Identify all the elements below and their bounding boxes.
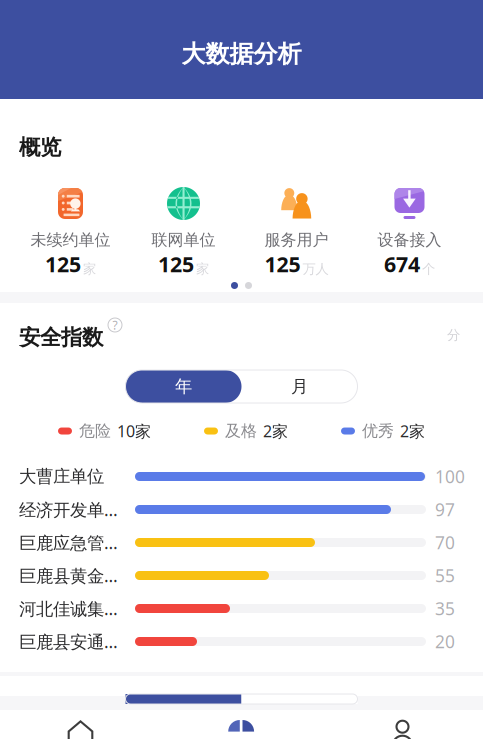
staticText: 2家 [400,420,425,442]
staticText: ? [112,317,117,333]
staticText: 巨鹿县安通… [19,630,118,653]
staticText: 674 [384,250,420,278]
staticText: 安全指数 [19,324,103,351]
staticText: 35 [435,597,455,620]
staticText: 河北佳诚集… [19,597,118,620]
staticText: 联网单位 [151,230,215,250]
staticText: 及格 [225,421,257,441]
staticText: 未续约单位 [30,230,110,250]
staticText: 20 [435,630,455,653]
staticText: 巨鹿县黄金… [19,564,118,587]
staticText: 经济开发单… [19,498,118,521]
staticText: 巨鹿应急管… [19,531,118,554]
staticText: 年 [175,376,192,397]
staticText: 大数据分析 [181,39,301,69]
staticText: 分 [447,327,460,343]
staticText: 家 [83,261,96,277]
staticText: 家 [196,261,209,277]
staticText: 70 [435,531,455,554]
staticText: 万人 [302,261,328,277]
button[interactable]: 大数据分析 [161,710,322,739]
staticText: 125 [45,250,81,278]
staticText: 大曹庄单位 [19,466,104,487]
button[interactable]: 首页 [0,710,161,739]
staticText: 2家 [263,420,288,442]
staticText: 概览 [19,134,61,161]
staticText: 危险 [79,421,111,441]
staticText: 10家 [117,420,151,442]
staticText: 125 [264,250,300,278]
button[interactable]: 年 [125,370,241,403]
staticText: 97 [435,498,455,521]
staticText: 月 [291,376,308,397]
staticText: 个 [422,261,435,277]
staticText: 优秀 [362,421,394,441]
staticText: 125 [158,250,194,278]
staticText: 100 [435,465,465,488]
staticText: 服务用户 [264,230,328,250]
button[interactable]: 我的 [322,710,483,739]
staticText: 55 [435,564,455,587]
staticText: 设备接入 [377,230,441,250]
button[interactable]: 月 [241,370,357,403]
